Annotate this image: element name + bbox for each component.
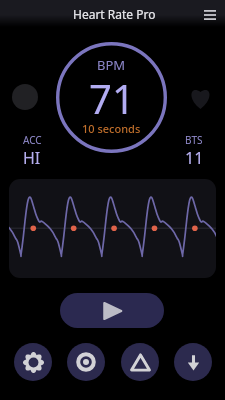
staticText: 11: [185, 147, 204, 169]
staticText: ACC: [23, 133, 42, 147]
button[interactable]: Download: [174, 343, 212, 381]
staticText: Heart Rate Pro: [73, 6, 156, 22]
button[interactable]: Settings: [14, 343, 52, 381]
staticText: 10 seconds: [82, 121, 141, 136]
staticText: HI: [23, 147, 41, 169]
button[interactable]: Menu: [198, 3, 222, 27]
button[interactable]: Record: [67, 343, 105, 381]
button[interactable]: Alerts: [121, 343, 159, 381]
staticText: BPM: [97, 56, 126, 74]
button[interactable]: Accuracy: [12, 84, 38, 110]
button[interactable]: Start measurement: [60, 293, 164, 328]
staticText: 71: [89, 71, 135, 125]
staticText: BTS: [185, 133, 203, 147]
